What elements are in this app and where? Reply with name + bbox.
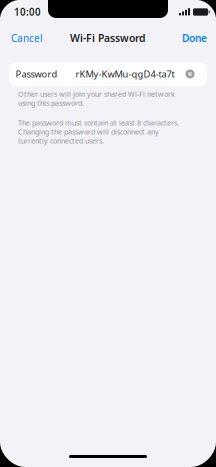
staticText: Wi-Fi Password	[70, 31, 146, 45]
staticText: The password must contain at least 8 cha…	[18, 118, 179, 146]
staticText: Password	[15, 68, 57, 80]
button[interactable]: Cancel	[0, 25, 54, 51]
staticText: Done	[182, 31, 207, 45]
button[interactable]: Done	[173, 25, 216, 51]
staticText: Cancel	[11, 31, 43, 45]
staticText: rKMy-KwMu-qgD4-ta7t	[75, 68, 174, 80]
staticText: 10:00	[14, 5, 41, 19]
button[interactable]: Clear password	[182, 66, 197, 81]
staticText: Other users will join your shared Wi-Fi …	[18, 89, 175, 108]
